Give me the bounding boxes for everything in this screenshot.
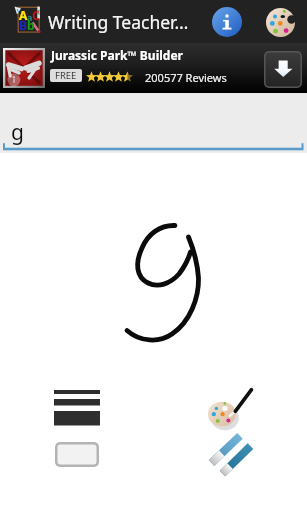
staticText: 200577 Reviews <box>145 70 227 85</box>
staticText: a <box>27 11 33 23</box>
button[interactable]: Jurassic Park™ Builder <box>0 43 307 93</box>
button[interactable]: Eraser <box>207 430 257 476</box>
staticText: A <box>19 7 28 23</box>
staticText: B <box>19 17 27 33</box>
button[interactable]: Clear canvas <box>52 439 102 470</box>
staticText: g <box>11 118 24 147</box>
button[interactable]: Stroke width <box>51 386 103 429</box>
staticText: C <box>32 7 40 23</box>
button[interactable]: Color palette <box>204 386 256 431</box>
staticText: b <box>27 17 35 33</box>
staticText: Jurassic Park™ Builder <box>51 47 183 63</box>
staticText: FREE <box>55 69 77 82</box>
button[interactable]: Info <box>206 1 248 43</box>
staticText: Writing Teacher… <box>48 10 189 34</box>
button[interactable]: Download <box>264 51 302 88</box>
button[interactable]: Color palette <box>259 1 301 43</box>
button[interactable]: g <box>0 93 307 153</box>
